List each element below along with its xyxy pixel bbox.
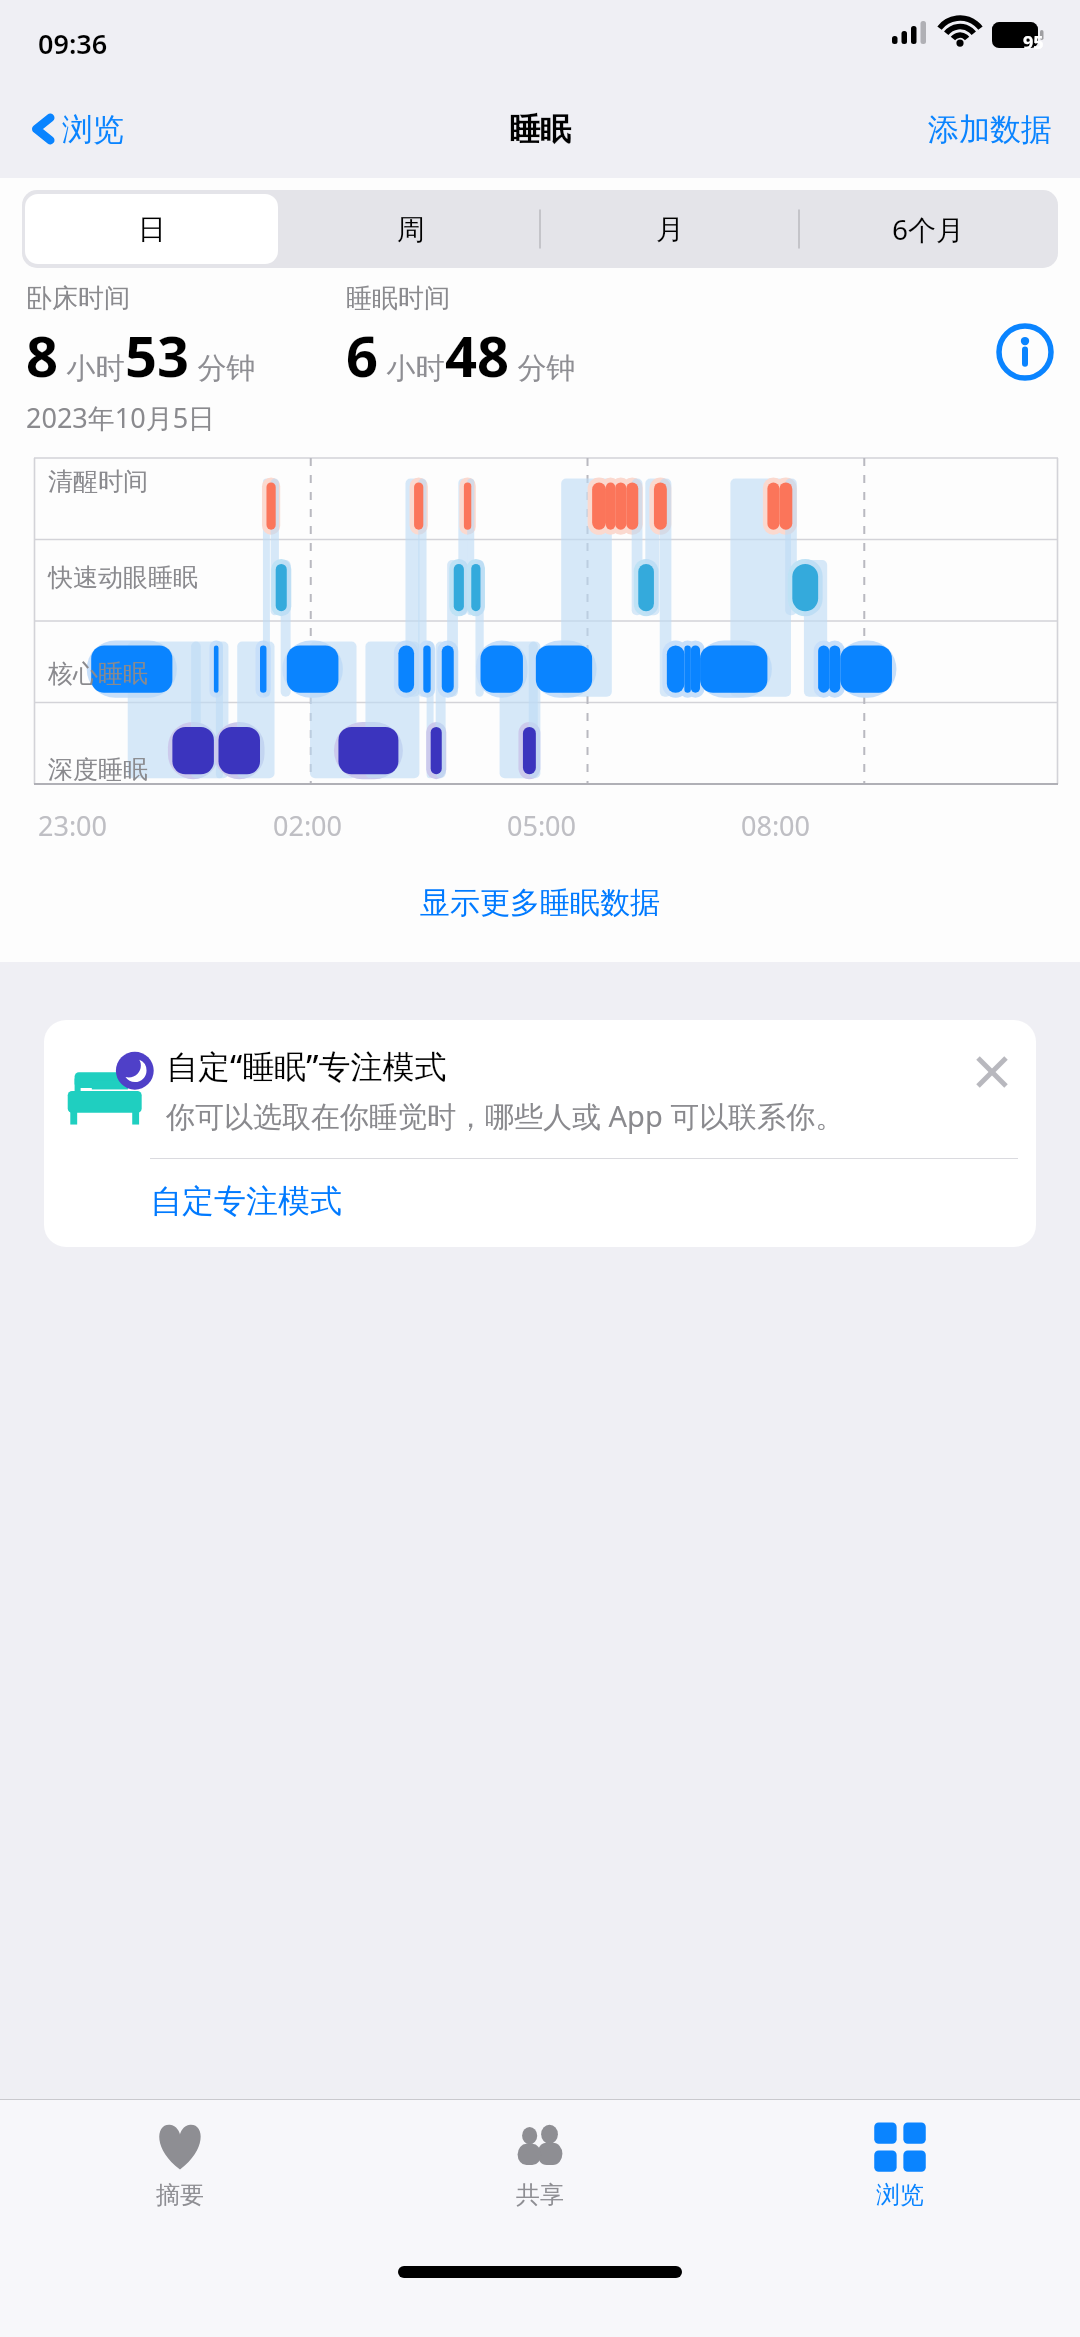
staticText: 自定“睡眠”专注模式 bbox=[166, 1044, 447, 1088]
button[interactable]: 自定“睡眠”专注模式 bbox=[44, 1020, 1036, 1247]
button[interactable]: 浏览 bbox=[22, 103, 132, 155]
staticText: 核心睡眠 bbox=[48, 658, 148, 689]
staticText: 清醒时间 bbox=[48, 466, 148, 497]
staticText: 2023年10月5日 bbox=[26, 399, 216, 436]
staticText: 快速动眼睡眠 bbox=[48, 562, 198, 593]
staticText: 睡眠时间 bbox=[346, 282, 450, 315]
staticText: 深度睡眠 bbox=[48, 754, 148, 785]
staticText: 睡眠 bbox=[509, 110, 571, 149]
button[interactable]: 信息 bbox=[996, 323, 1054, 381]
staticText: 你可以选取在你睡觉时，哪些人或 App 可以联系你。 bbox=[166, 1096, 845, 1136]
staticText: 8 bbox=[26, 317, 59, 393]
staticText: 分钟 bbox=[510, 347, 576, 387]
button[interactable]: 周 bbox=[281, 190, 540, 268]
staticText: 浏览 bbox=[876, 2180, 924, 2210]
button[interactable]: 月 bbox=[540, 190, 799, 268]
button[interactable]: 关闭 bbox=[966, 1046, 1018, 1098]
staticText: 05:00 bbox=[507, 807, 577, 844]
button[interactable]: 日 bbox=[22, 190, 281, 268]
button[interactable]: 共享 bbox=[360, 2100, 720, 2250]
staticText: 小时 bbox=[379, 347, 445, 387]
staticText: 月 bbox=[656, 212, 684, 247]
staticText: 浏览 bbox=[62, 110, 124, 149]
staticText: 分钟 bbox=[190, 347, 256, 387]
staticText: 共享 bbox=[516, 2180, 564, 2210]
button[interactable]: 浏览 bbox=[720, 2100, 1080, 2250]
staticText: 日 bbox=[138, 212, 166, 247]
staticText: 6 bbox=[346, 317, 379, 393]
staticText: 自定专注模式 bbox=[150, 1181, 342, 1221]
staticText: 48 bbox=[445, 317, 510, 393]
button[interactable]: 添加数据 bbox=[922, 104, 1058, 155]
button[interactable]: 自定专注模式 bbox=[44, 1159, 1036, 1247]
staticText: 08:00 bbox=[741, 807, 811, 844]
staticText: 53 bbox=[125, 317, 190, 393]
staticText: 6个月 bbox=[892, 210, 965, 248]
button[interactable]: 摘要 bbox=[0, 2100, 360, 2250]
button[interactable]: 显示更多睡眠数据 bbox=[410, 878, 670, 928]
staticText: 02:00 bbox=[273, 807, 343, 844]
staticText: 09:36 bbox=[38, 25, 108, 62]
staticText: 95 bbox=[1023, 30, 1044, 55]
staticText: 卧床时间 bbox=[26, 282, 130, 315]
staticText: 周 bbox=[397, 212, 425, 247]
staticText: 摘要 bbox=[156, 2180, 204, 2210]
staticText: 23:00 bbox=[38, 807, 108, 844]
staticText: 小时 bbox=[59, 347, 125, 387]
button[interactable]: 6个月 bbox=[799, 190, 1058, 268]
